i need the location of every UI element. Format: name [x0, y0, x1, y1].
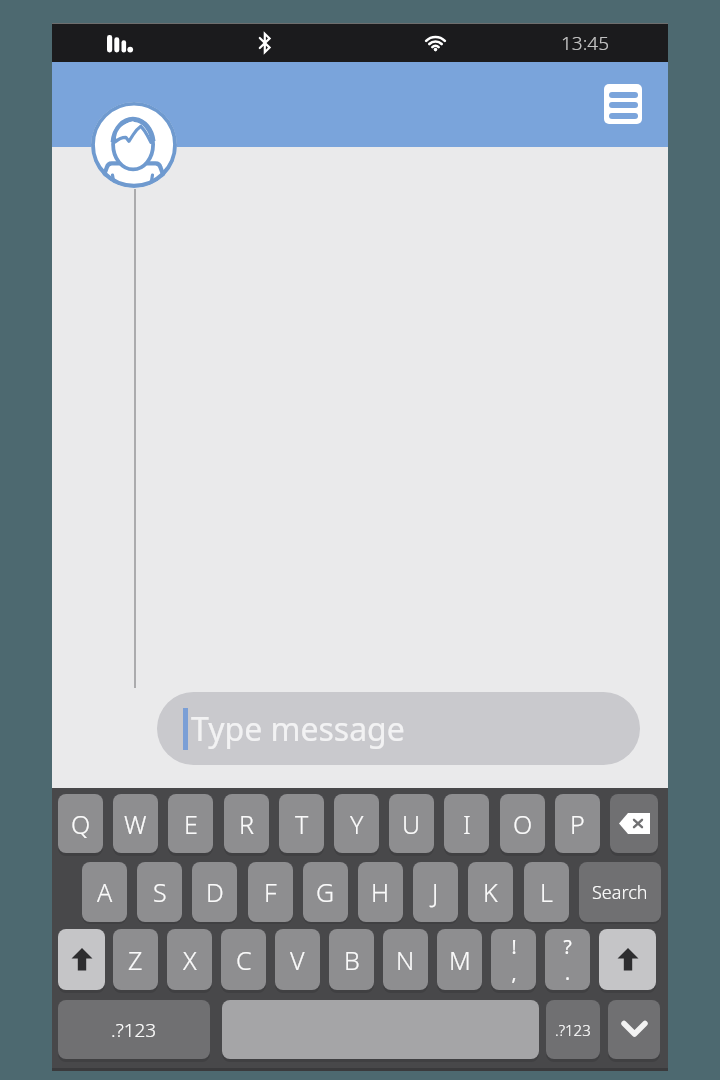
button[interactable]: .?123: [546, 1000, 600, 1059]
staticText: M: [449, 943, 471, 977]
staticText: P: [570, 807, 585, 841]
staticText: B: [344, 943, 360, 977]
button[interactable]: [58, 929, 105, 990]
staticText: .?123: [111, 1017, 157, 1043]
staticText: N: [396, 943, 415, 977]
staticText: Q: [71, 807, 91, 841]
button[interactable]: B: [329, 929, 374, 990]
staticText: V: [290, 943, 305, 977]
button[interactable]: F: [248, 862, 293, 922]
button[interactable]: G: [303, 862, 348, 922]
staticText: Y: [350, 807, 364, 841]
button[interactable]: C: [221, 929, 266, 990]
staticText: L: [540, 875, 553, 909]
staticText: E: [184, 807, 198, 841]
button[interactable]: [610, 794, 658, 853]
button[interactable]: D: [192, 862, 237, 922]
button[interactable]: L: [524, 862, 569, 922]
button[interactable]: N: [383, 929, 428, 990]
staticText: J: [432, 875, 439, 909]
staticText: O: [513, 807, 533, 841]
button[interactable]: H: [358, 862, 403, 922]
staticText: .?123: [555, 1020, 591, 1040]
button[interactable]: M: [437, 929, 482, 990]
button[interactable]: [222, 1000, 539, 1059]
staticText: 13:45: [561, 30, 610, 56]
button[interactable]: V: [275, 929, 320, 990]
staticText: K: [483, 875, 498, 909]
staticText: D: [206, 875, 224, 909]
staticText: H: [371, 875, 390, 909]
staticText: Search: [592, 880, 648, 905]
button[interactable]: .?123: [58, 1000, 210, 1059]
button[interactable]: Z: [113, 929, 158, 990]
button[interactable]: E: [168, 794, 213, 853]
staticText: U: [402, 807, 421, 841]
staticText: C: [236, 943, 252, 977]
button[interactable]: [599, 929, 656, 990]
button[interactable]: A: [82, 862, 127, 922]
staticText: W: [124, 807, 147, 841]
staticText: Type message: [191, 707, 405, 751]
button[interactable]: K: [468, 862, 513, 922]
button[interactable]: [604, 84, 642, 124]
button[interactable]: U: [389, 794, 434, 853]
staticText: X: [183, 943, 197, 977]
button[interactable]: X: [167, 929, 212, 990]
button[interactable]: T: [279, 794, 324, 853]
button[interactable]: I: [444, 794, 489, 853]
button[interactable]: R: [224, 794, 269, 853]
staticText: F: [264, 875, 277, 909]
button[interactable]: ? .: [545, 929, 590, 990]
staticText: T: [295, 807, 309, 841]
staticText: S: [153, 875, 167, 909]
button[interactable]: Y: [334, 794, 379, 853]
button[interactable]: S: [137, 862, 182, 922]
button[interactable]: Type message: [157, 692, 640, 765]
staticText: A: [97, 875, 113, 909]
staticText: ! ,: [511, 934, 517, 985]
button[interactable]: [608, 1000, 660, 1059]
button[interactable]: O: [500, 794, 545, 853]
staticText: G: [316, 875, 335, 909]
staticText: ? .: [563, 934, 572, 985]
button[interactable]: ! ,: [491, 929, 536, 990]
button[interactable]: W: [113, 794, 158, 853]
staticText: Z: [128, 943, 143, 977]
button[interactable]: P: [555, 794, 600, 853]
staticText: R: [239, 807, 254, 841]
button[interactable]: Q: [58, 794, 103, 853]
staticText: I: [463, 807, 471, 841]
button[interactable]: Search: [579, 862, 661, 922]
button[interactable]: J: [413, 862, 458, 922]
